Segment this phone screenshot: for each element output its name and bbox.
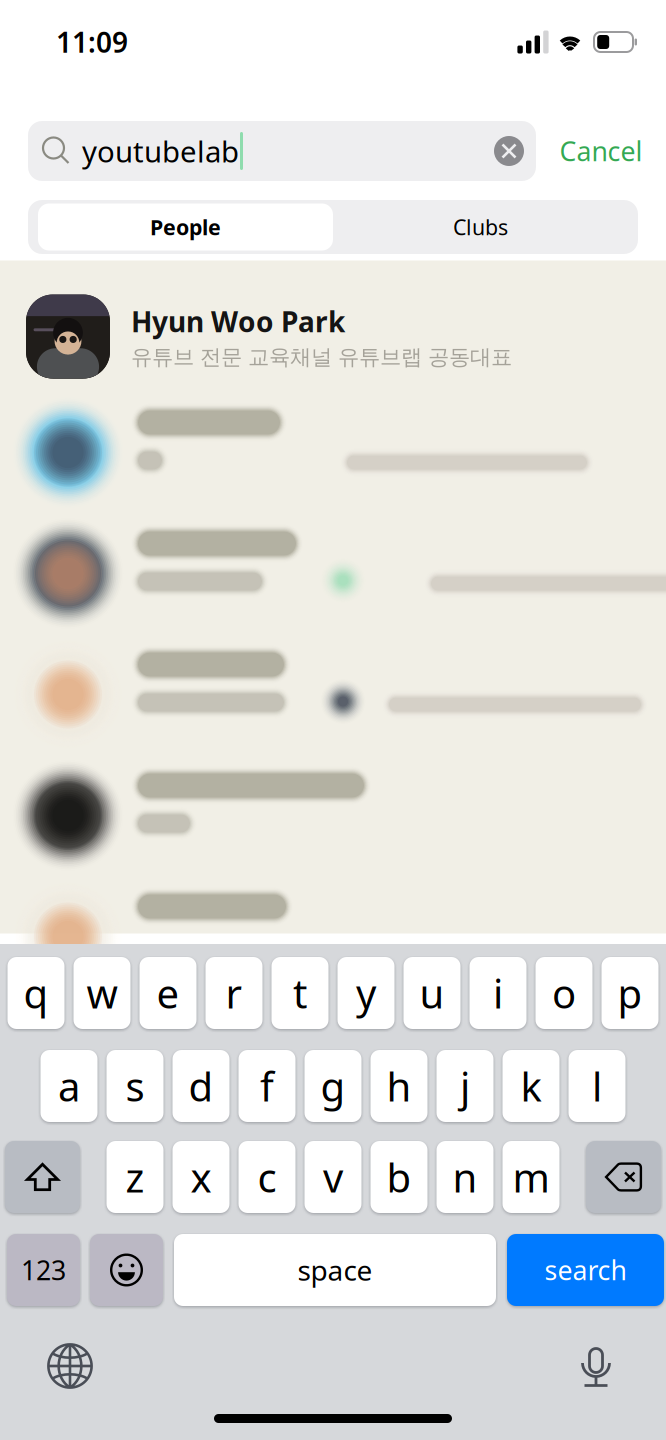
staticText: youtubelab (82, 131, 239, 170)
staticText: x (190, 1150, 211, 1203)
button[interactable]: l (568, 1050, 625, 1122)
button[interactable]: o (535, 957, 592, 1029)
button[interactable]: g (304, 1050, 361, 1122)
button[interactable]: n (436, 1141, 493, 1213)
button[interactable]: v (304, 1141, 361, 1213)
button[interactable]: search (507, 1234, 664, 1306)
staticText: a (58, 1059, 80, 1112)
button[interactable]: i (469, 957, 526, 1029)
staticText: c (257, 1150, 276, 1203)
button[interactable]: k (502, 1050, 559, 1122)
button[interactable]: Emoji (90, 1234, 163, 1306)
staticText: r (225, 966, 242, 1019)
button[interactable]: j (436, 1050, 493, 1122)
staticText: v (323, 1150, 343, 1203)
staticText: o (552, 966, 576, 1019)
staticText: Hyun Woo Park (131, 303, 345, 340)
button[interactable]: Hyun Woo Park (0, 280, 666, 392)
button[interactable]: h (370, 1050, 427, 1122)
staticText: e (156, 966, 179, 1019)
button[interactable]: m (502, 1141, 559, 1213)
staticText: w (86, 966, 117, 1019)
staticText: l (592, 1059, 602, 1112)
button[interactable]: t (271, 957, 328, 1029)
staticText: n (452, 1150, 477, 1203)
button[interactable]: r (205, 957, 262, 1029)
button[interactable]: p (601, 957, 658, 1029)
staticText: Cancel (559, 133, 642, 169)
button[interactable]: x (172, 1141, 229, 1213)
button[interactable]: 123 (7, 1234, 80, 1306)
button[interactable]: e (139, 957, 196, 1029)
button[interactable]: y (337, 957, 394, 1029)
button[interactable]: z (106, 1141, 163, 1213)
button[interactable]: f (238, 1050, 295, 1122)
button[interactable]: Shift (5, 1141, 80, 1213)
staticText: 11:09 (56, 23, 128, 61)
button[interactable]: s (106, 1050, 163, 1122)
staticText: i (493, 966, 503, 1019)
button[interactable]: Next keyboard (34, 1330, 106, 1402)
staticText: z (125, 1150, 144, 1203)
staticText: f (260, 1059, 274, 1112)
button[interactable]: Delete (586, 1141, 661, 1213)
staticText: p (617, 966, 642, 1019)
staticText: k (520, 1059, 541, 1112)
staticText: m (512, 1150, 549, 1203)
button[interactable]: u (403, 957, 460, 1029)
button[interactable]: b (370, 1141, 427, 1213)
button[interactable]: d (172, 1050, 229, 1122)
button[interactable]: space (174, 1234, 496, 1306)
button[interactable]: People (38, 203, 333, 250)
button[interactable]: Clubs (333, 203, 628, 250)
button[interactable]: Dictation (560, 1330, 632, 1402)
button[interactable]: w (73, 957, 130, 1029)
staticText: People (150, 213, 221, 241)
staticText: b (386, 1150, 411, 1203)
staticText: 유튜브 전문 교육채널 유튜브랩 공동대표 (131, 344, 512, 370)
staticText: u (419, 966, 444, 1019)
staticText: Clubs (453, 213, 508, 241)
button[interactable]: Cancel (536, 121, 666, 181)
staticText: 123 (21, 1252, 66, 1288)
staticText: t (293, 966, 307, 1019)
staticText: y (356, 966, 376, 1019)
staticText: j (460, 1059, 470, 1112)
staticText: space (297, 1251, 372, 1289)
button[interactable]: q (7, 957, 64, 1029)
staticText: search (544, 1252, 626, 1288)
button[interactable]: Clear text (487, 127, 531, 175)
button[interactable]: a (40, 1050, 97, 1122)
staticText: g (320, 1059, 345, 1112)
staticText: q (23, 966, 48, 1019)
button[interactable]: c (238, 1141, 295, 1213)
staticText: d (188, 1059, 213, 1112)
staticText: h (386, 1059, 411, 1112)
staticText: s (125, 1059, 144, 1112)
